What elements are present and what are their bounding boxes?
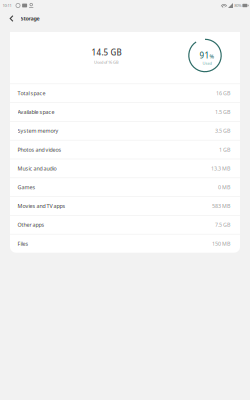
staticText: 3.5 GB (215, 127, 230, 134)
button[interactable]: Photos and videos (10, 140, 240, 159)
staticText: Music and audio (18, 165, 57, 172)
staticText: 80% (234, 3, 241, 8)
staticText: 10:11 (2, 3, 11, 8)
button[interactable]: Games (10, 178, 240, 196)
staticText: 1 GB (219, 146, 230, 153)
button[interactable]: Storage (0, 11, 48, 26)
staticText: 1.5 GB (215, 108, 230, 116)
staticText: Used of 16 GB (94, 60, 119, 65)
staticText: 14.5 GB (91, 47, 121, 58)
staticText: 91% (199, 50, 214, 61)
button[interactable]: Music and audio (10, 159, 240, 177)
button[interactable]: Files (10, 234, 240, 253)
staticText: 16 GB (216, 90, 230, 97)
staticText: Available space (18, 108, 55, 116)
button[interactable]: System memory (10, 122, 240, 140)
staticText: Storage (20, 15, 39, 22)
staticText: Total space (18, 90, 46, 97)
staticText: Games (18, 184, 36, 191)
button[interactable]: Available space (10, 103, 240, 121)
staticText: Photos and videos (18, 146, 62, 153)
staticText: 0 MB (218, 184, 230, 191)
staticText: Other apps (18, 221, 45, 228)
staticText: Movies and TV apps (18, 202, 66, 210)
staticText: 150 MB (212, 240, 230, 247)
staticText: 583 MB (212, 202, 230, 210)
staticText: Files (18, 240, 29, 247)
staticText: 7.5 GB (215, 221, 230, 228)
button[interactable]: Total space (10, 84, 240, 102)
staticText: 13.3 MB (211, 165, 230, 172)
staticText: System memory (18, 127, 59, 134)
button[interactable]: Movies and TV apps (10, 197, 240, 215)
staticText: Used (202, 61, 211, 66)
button[interactable]: Other apps (10, 216, 240, 234)
